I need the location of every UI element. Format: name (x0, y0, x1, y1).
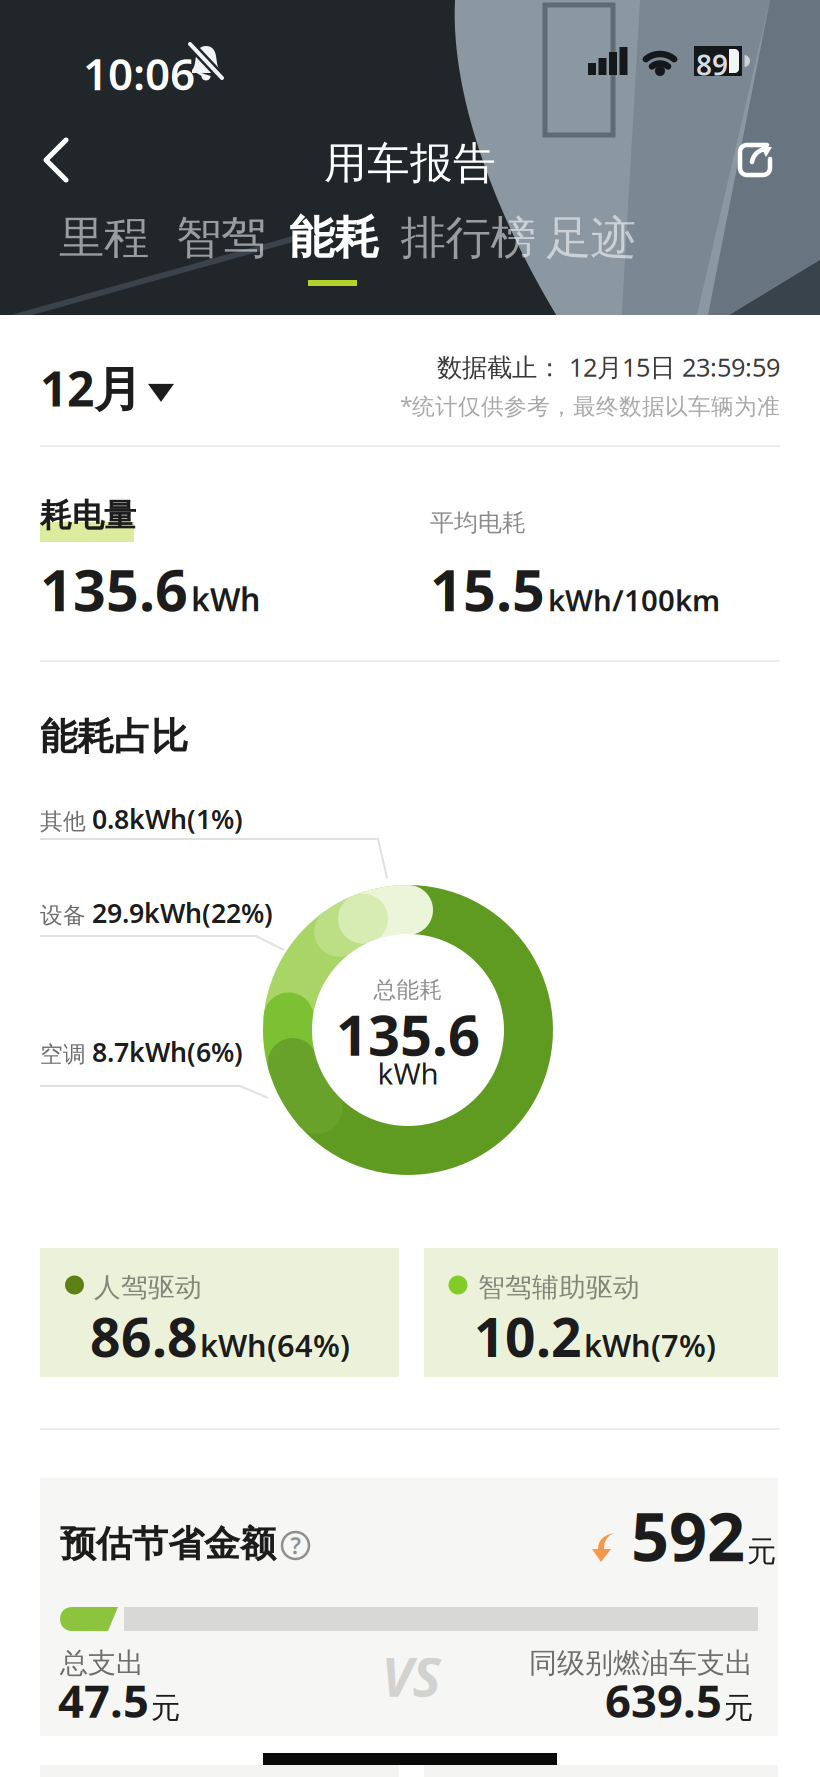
staticText: 592 (631, 1491, 745, 1579)
staticText: 135.6 (40, 551, 188, 627)
staticText: 89 (696, 46, 728, 83)
staticText: 其他 (40, 808, 86, 835)
staticText: 10:06 (83, 44, 195, 102)
staticText: 15.5 (430, 551, 545, 627)
staticText: 能耗占比 (40, 714, 188, 760)
staticText: 排行榜 (400, 210, 535, 266)
staticText: 元 (747, 1533, 776, 1569)
staticText: 元 (151, 1690, 180, 1726)
staticText: 29.9kWh(22%) (92, 895, 273, 930)
staticText: 空调 (40, 1041, 86, 1068)
staticText: 86.8 (90, 1301, 198, 1372)
button[interactable]: Share (737, 142, 775, 180)
staticText: 8.7kWh(6%) (92, 1034, 243, 1069)
staticText: 0.8kWh(1%) (92, 801, 243, 836)
staticText: ? (290, 1530, 300, 1560)
staticText: 总能耗 (373, 976, 442, 1004)
staticText: 10.2 (474, 1301, 582, 1372)
button[interactable]: 智驾辅助驱动 (0, 0, 820, 1777)
staticText: 639.5 (605, 1670, 722, 1730)
staticText: 数据截止： 12月15日 23:59:59 (437, 350, 780, 384)
staticText: kWh(64%) (200, 1325, 350, 1365)
button[interactable]: 人驾驱动 (0, 0, 820, 1777)
staticText: 135.6 (336, 997, 480, 1071)
staticText: kWh(7%) (584, 1325, 716, 1365)
button[interactable]: 智驾 (176, 210, 266, 266)
button[interactable]: 能耗 (289, 210, 379, 266)
staticText: 能耗 (289, 210, 379, 266)
button[interactable]: 说明 (282, 1532, 309, 1559)
staticText: kWh (377, 1053, 438, 1092)
staticText: 12月 (40, 356, 142, 420)
staticText: 智驾 (176, 210, 266, 266)
button[interactable]: 里程 (59, 210, 149, 266)
staticText: 里程 (59, 210, 149, 266)
staticText: 平均电耗 (430, 508, 526, 537)
staticText: kWh/100km (548, 580, 720, 619)
staticText: 总支出 (60, 1646, 144, 1680)
staticText: 智驾辅助驱动 (478, 1271, 640, 1304)
staticText: 足迹 (546, 210, 636, 266)
button[interactable]: 排行榜 (400, 210, 535, 266)
staticText: 预估节省金额 (60, 1522, 276, 1566)
button[interactable]: 足迹 (546, 210, 636, 266)
button[interactable]: Back (28, 132, 84, 188)
staticText: 同级别燃油车支出 (529, 1646, 753, 1680)
staticText: VS (381, 1641, 440, 1711)
staticText: 47.5 (58, 1670, 149, 1730)
staticText: 人驾驱动 (94, 1271, 202, 1304)
staticText: 元 (724, 1690, 753, 1726)
staticText: *统计仅供参考，最终数据以车辆为准 (400, 391, 780, 421)
button[interactable]: 选择月份 (40, 356, 174, 420)
staticText: kWh (191, 578, 260, 620)
staticText: 设备 (40, 902, 86, 929)
staticText: 耗电量 (40, 496, 136, 535)
staticText: 用车报告 (324, 137, 496, 189)
